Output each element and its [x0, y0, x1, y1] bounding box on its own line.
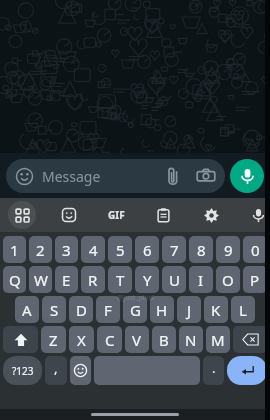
button[interactable]: V — [125, 326, 149, 353]
staticText: 5 — [116, 240, 125, 260]
staticText: G — [130, 300, 141, 320]
staticText: R — [88, 270, 98, 290]
staticText: 8 — [197, 240, 206, 260]
button[interactable]: B — [152, 326, 176, 353]
button[interactable]: 2 — [29, 236, 52, 263]
button[interactable]: O — [216, 266, 240, 293]
button[interactable]: , — [45, 356, 67, 385]
staticText: N — [185, 330, 197, 350]
button[interactable]: Q — [3, 266, 26, 293]
button[interactable]: A — [15, 296, 39, 323]
button[interactable]: J — [177, 296, 201, 323]
button[interactable]: Y — [135, 266, 159, 293]
staticText: 3 — [62, 240, 71, 260]
button[interactable]: F — [96, 296, 120, 323]
staticText: I — [198, 270, 204, 290]
button[interactable]: 5 — [108, 236, 132, 263]
button[interactable]: I — [189, 266, 213, 293]
staticText: D — [76, 300, 87, 320]
button[interactable]: C — [97, 326, 122, 353]
staticText: Y — [143, 270, 152, 290]
button[interactable]: L — [231, 296, 255, 323]
button[interactable]: Toolbox — [8, 201, 36, 229]
staticText: W — [34, 270, 48, 290]
staticText: S — [50, 300, 59, 320]
staticText: H — [156, 300, 168, 320]
staticText: E — [62, 270, 71, 290]
button[interactable]: Clipboard — [151, 203, 175, 227]
button[interactable]: T — [108, 266, 132, 293]
staticText: 6 — [143, 240, 152, 260]
button[interactable]: 7 — [162, 236, 186, 263]
staticText: . — [212, 359, 216, 377]
button[interactable]: Emoji — [70, 356, 91, 385]
button[interactable]: GIF — [103, 202, 129, 228]
button[interactable]: Camera — [196, 166, 216, 186]
staticText: J — [187, 300, 192, 320]
staticText: C — [105, 330, 115, 350]
staticText: GIF — [108, 208, 125, 222]
staticText: U — [169, 270, 180, 290]
staticText: F — [104, 300, 112, 320]
button[interactable]: Space — [94, 356, 200, 385]
button[interactable]: R — [81, 266, 105, 293]
staticText: K — [211, 300, 221, 320]
button[interactable]: ?123 — [3, 356, 42, 385]
staticText: 0 — [251, 240, 260, 260]
button[interactable]: Attach — [163, 166, 183, 186]
button[interactable]: . — [203, 356, 224, 385]
staticText: 1 — [10, 240, 19, 260]
staticText: L — [239, 300, 247, 320]
button[interactable]: M — [206, 326, 230, 353]
staticText: 2 — [36, 240, 45, 260]
button[interactable]: W — [29, 266, 52, 293]
staticText: 4 — [89, 240, 98, 260]
button[interactable]: K — [204, 296, 228, 323]
staticText: ?123 — [12, 364, 34, 378]
button[interactable]: S — [42, 296, 66, 323]
button[interactable]: E — [55, 266, 78, 293]
staticText: V — [132, 330, 142, 350]
staticText: Message — [42, 167, 101, 186]
button[interactable]: 6 — [135, 236, 159, 263]
staticText: T — [116, 270, 125, 290]
button[interactable]: G — [123, 296, 147, 323]
staticText: , — [54, 359, 58, 377]
staticText: 7 — [170, 240, 179, 260]
button[interactable]: Enter — [227, 356, 267, 385]
button[interactable]: P — [243, 266, 267, 293]
button[interactable]: 9 — [216, 236, 240, 263]
staticText: Z — [49, 330, 58, 350]
button[interactable]: 4 — [81, 236, 105, 263]
staticText: P — [250, 270, 260, 290]
button[interactable]: Voice message — [230, 159, 264, 193]
button[interactable]: Emoji — [15, 167, 34, 186]
staticText: O — [222, 270, 234, 290]
button[interactable]: N — [179, 326, 203, 353]
button[interactable]: Emoji — [6, 159, 225, 193]
button[interactable]: X — [69, 326, 94, 353]
button[interactable]: Shift — [3, 326, 38, 353]
button[interactable]: 0 — [243, 236, 267, 263]
staticText: @just_pixel — [117, 293, 154, 303]
staticText: B — [159, 330, 169, 350]
staticText: Q — [9, 270, 21, 290]
staticText: A — [22, 300, 32, 320]
button[interactable]: H — [150, 296, 174, 323]
staticText: X — [77, 330, 86, 350]
button[interactable]: Backspace — [233, 326, 267, 353]
button[interactable]: 3 — [55, 236, 78, 263]
button[interactable]: Z — [41, 326, 66, 353]
button[interactable]: Settings — [199, 203, 223, 227]
button[interactable]: Voice input — [247, 203, 270, 227]
button[interactable]: U — [162, 266, 186, 293]
button[interactable]: Stickers — [57, 203, 81, 227]
button[interactable]: 1 — [3, 236, 26, 263]
staticText: 9 — [224, 240, 233, 260]
button[interactable]: D — [69, 296, 93, 323]
staticText: M — [211, 330, 225, 350]
button[interactable]: 8 — [189, 236, 213, 263]
